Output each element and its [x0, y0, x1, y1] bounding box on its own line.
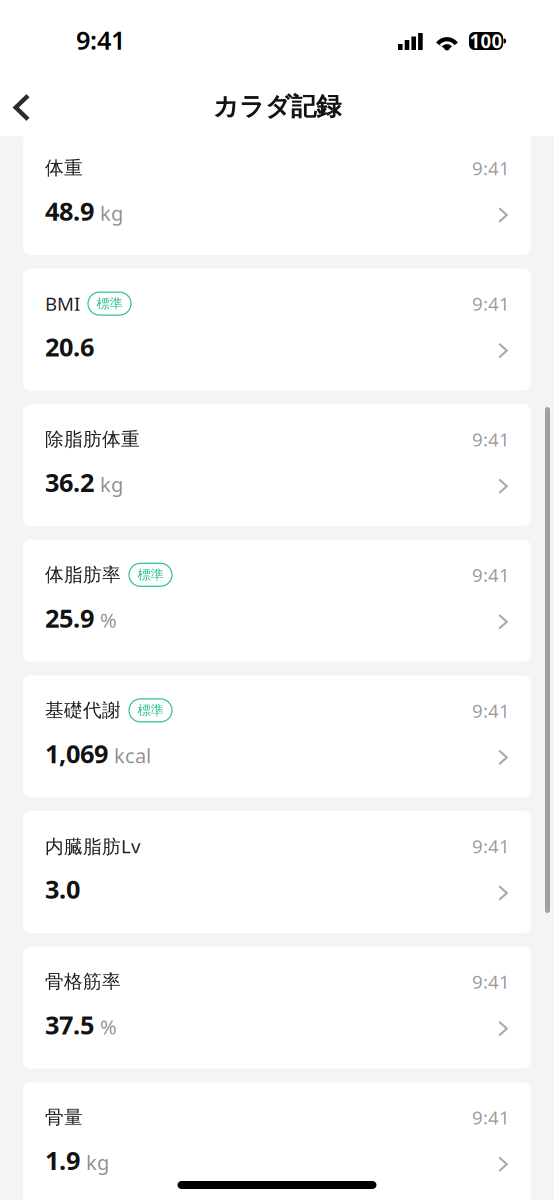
staticText: 9:41 — [472, 969, 510, 994]
staticText: 9:41 — [472, 156, 510, 180]
staticText: BMI — [45, 291, 80, 316]
staticText: % — [100, 1013, 117, 1040]
staticText: 9:41 — [472, 562, 510, 587]
staticText: カラダ記録 — [213, 91, 341, 122]
staticText: 標準 — [137, 567, 163, 583]
staticText: 9:41 — [76, 23, 125, 57]
button[interactable]: 戻る — [0, 81, 47, 133]
button[interactable]: 骨格筋率 — [23, 947, 531, 1069]
staticText: 体重 — [45, 156, 83, 179]
staticText: 1,069 — [45, 737, 108, 770]
button[interactable]: 体脂肪率 — [23, 540, 531, 662]
staticText: % — [100, 607, 117, 633]
button[interactable]: 内臓脂肪Lv — [23, 811, 531, 933]
staticText: 内臓脂肪Lv — [45, 834, 140, 858]
staticText: 骨格筋率 — [45, 970, 121, 993]
staticText: kg — [100, 471, 123, 498]
staticText: 9:41 — [472, 1105, 510, 1130]
button[interactable]: 除脂肪体重 — [23, 404, 531, 526]
staticText: 骨量 — [45, 1106, 83, 1129]
staticText: 9:41 — [472, 698, 510, 723]
staticText: kg — [100, 200, 123, 226]
staticText: kg — [86, 1149, 109, 1176]
staticText: 100 — [469, 29, 502, 53]
staticText: 36.2 — [45, 465, 94, 499]
staticText: kcal — [114, 742, 151, 769]
button[interactable]: 基礎代謝 — [23, 675, 531, 797]
button[interactable]: BMI — [23, 269, 531, 391]
staticText: 基礎代謝 — [45, 699, 121, 722]
staticText: 9:41 — [472, 427, 510, 452]
staticText: 9:41 — [472, 834, 510, 858]
button[interactable]: 骨量 — [23, 1082, 531, 1200]
staticText: 体脂肪率 — [45, 563, 121, 586]
staticText: 25.9 — [45, 601, 94, 635]
staticText: 20.6 — [45, 330, 94, 363]
staticText: 標準 — [96, 295, 122, 312]
staticText: 37.5 — [45, 1008, 94, 1041]
staticText: 48.9 — [45, 194, 94, 228]
staticText: 除脂肪体重 — [45, 428, 140, 451]
staticText: 標準 — [137, 702, 163, 719]
staticText: 9:41 — [472, 291, 510, 316]
button[interactable]: 体重 — [23, 133, 531, 255]
staticText: 3.0 — [45, 872, 80, 906]
staticText: 1.9 — [45, 1143, 80, 1177]
